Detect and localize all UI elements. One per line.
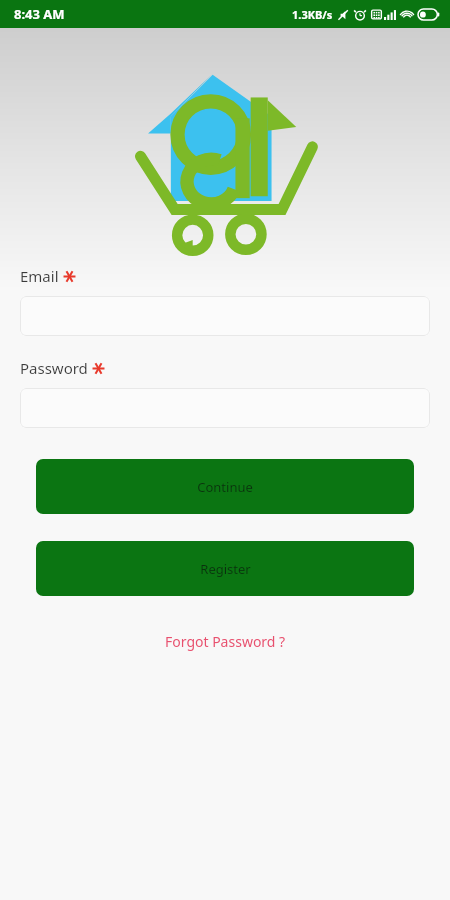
staticText: Password: [20, 358, 88, 378]
staticText: Continue: [197, 478, 253, 496]
button[interactable]: Forgot Password ?: [155, 626, 296, 657]
button[interactable]: [20, 388, 430, 428]
button[interactable]: Register: [36, 541, 414, 596]
staticText: 8:43 AM: [14, 5, 65, 23]
button[interactable]: Continue: [36, 459, 414, 514]
button[interactable]: [20, 296, 430, 336]
staticText: Forgot Password ?: [165, 632, 286, 651]
staticText: Email: [20, 266, 59, 286]
staticText: Register: [200, 560, 251, 578]
staticText: 1.3KB/s: [292, 7, 333, 22]
